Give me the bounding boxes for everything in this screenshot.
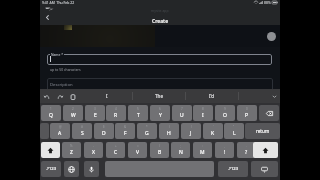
staticText: 8 [202,107,204,111]
staticText: E [94,112,97,119]
staticText: . [246,144,247,148]
staticText: Z [70,149,73,156]
staticText: Description [50,82,73,88]
button[interactable]: Backspace [259,105,279,121]
staticText: / [159,144,161,148]
button[interactable]: Hide keyboard [251,161,278,177]
button[interactable]: . [237,142,256,158]
staticText: The [155,93,163,99]
button[interactable]: Dictate [84,161,99,177]
staticText: .?123 [46,166,57,172]
button[interactable]: 9 [215,105,235,121]
staticText: S [81,130,84,137]
button[interactable]: 4 [106,105,126,121]
staticText: ( [169,125,170,129]
staticText: - [93,144,94,148]
staticText: F [124,130,127,137]
button[interactable]: Change keyboard [64,161,79,177]
button[interactable]: ; [171,142,190,158]
staticText: 1 [50,107,52,111]
staticText: J [190,130,192,137]
staticText: B [158,149,162,156]
button[interactable]: * [137,123,157,139]
button[interactable]: return [245,123,280,139]
button[interactable]: $ [94,123,114,139]
staticText: G [145,130,149,137]
staticText: @ [59,125,62,129]
staticText: ) [191,125,192,129]
staticText: I [202,112,204,119]
button[interactable]: - [84,142,103,158]
staticText: ! [224,149,226,156]
button[interactable]: I [81,89,132,103]
button[interactable]: Description [47,78,273,92]
staticText: K [211,130,215,137]
button[interactable]: # [72,123,92,139]
button[interactable]: 0 [237,105,257,121]
staticText: ' [213,125,214,129]
button[interactable]: I'd [186,89,238,103]
button[interactable]: Tab [40,123,49,139]
button[interactable]: The [133,89,185,103]
staticText: W [71,112,76,119]
staticText: Q [49,112,53,119]
button[interactable]: & [115,123,135,139]
staticText: 9:41 AM Thu Feb 22 [42,0,75,5]
staticText: # [81,125,83,129]
staticText: U [180,112,184,119]
staticText: 88% [264,0,271,5]
button[interactable]: 8 [193,105,213,121]
staticText: Name * [51,52,63,56]
button[interactable]: % [62,142,81,158]
button[interactable]: Shift [41,142,60,158]
staticText: V [136,149,140,156]
button[interactable]: ) [181,123,201,139]
staticText: 5 [137,107,139,111]
staticText: return [256,128,270,134]
button[interactable]: Undo [42,92,51,101]
button[interactable]: .?123 [218,161,248,177]
staticText: ; [180,144,181,148]
staticText: 7 [181,107,183,111]
staticText: R [114,112,118,119]
button[interactable]: Hide predictions [270,92,279,101]
button[interactable]: ( [159,123,179,139]
button[interactable]: Profile photo [267,32,276,41]
button[interactable]: 7 [172,105,192,121]
staticText: X [92,149,95,156]
staticText: up to 50 characters [50,67,81,72]
button[interactable]: @ [50,123,70,139]
staticText: P [245,112,249,119]
staticText: : [202,144,203,148]
staticText: T [137,112,140,119]
button[interactable]: 5 [128,105,148,121]
staticText: " [233,125,235,129]
button[interactable]: Paste [68,92,77,101]
staticText: 6 [159,107,161,111]
staticText: = [137,144,139,148]
button[interactable]: Redo [55,92,64,101]
button[interactable]: 3 [85,105,105,121]
button[interactable]: / [150,142,169,158]
button[interactable]: 1 [41,105,61,121]
staticText: $ [103,125,105,129]
button[interactable]: Shift [253,142,278,158]
button[interactable]: " [224,123,244,139]
button[interactable]: ' [203,123,223,139]
button[interactable]: = [128,142,147,158]
button[interactable]: 2 [63,105,83,121]
staticText: * [146,125,148,129]
button[interactable] [47,54,272,65]
button[interactable]: .?123 [41,161,61,177]
button[interactable]: , [215,142,234,158]
staticText: Create [152,18,169,25]
button[interactable]: Back [42,12,53,23]
staticText: L [233,130,236,137]
button[interactable]: : [193,142,212,158]
button[interactable]: 6 [150,105,170,121]
staticText: & [124,125,127,129]
staticText: 9 [224,107,226,111]
button[interactable]: + [106,142,125,158]
staticText: 4 [115,107,117,111]
